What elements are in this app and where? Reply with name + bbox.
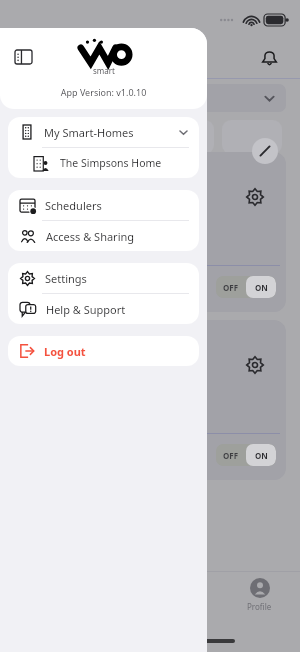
staticText: ON: [255, 282, 268, 293]
staticText: Bath and TV: [31, 130, 94, 145]
staticText: The Simpsons Home: [60, 156, 162, 170]
staticText: My Smart-Homes: [44, 125, 134, 140]
button[interactable]: My Smart-Homes: [8, 117, 199, 147]
staticText: ON: [255, 450, 268, 461]
staticText: App Version: v1.0.10: [0, 86, 207, 98]
staticText: Schedulers: [45, 198, 102, 213]
button[interactable]: The Simpsons Home: [8, 148, 199, 178]
button[interactable]: Access & Sharing: [8, 221, 199, 251]
staticText: OFF: [223, 450, 239, 461]
button[interactable]: OFF: [216, 276, 246, 298]
button[interactable]: Toggle sidebar: [10, 44, 36, 70]
button[interactable]: [222, 120, 282, 154]
staticText: Settings: [45, 271, 87, 286]
button[interactable]: Edit: [252, 138, 278, 164]
button[interactable]: OFF: [216, 444, 246, 466]
button[interactable]: Device settings: [246, 356, 264, 374]
staticText: Dining R: [144, 130, 188, 145]
staticText: Log out: [44, 344, 86, 359]
button[interactable]: Bath and TV: [14, 120, 110, 154]
staticText: r: [18, 224, 24, 240]
button[interactable]: Device settings: [14, 152, 286, 312]
button[interactable]: Notifications: [254, 42, 284, 72]
button[interactable]: Device settings: [14, 320, 286, 480]
button[interactable]: ON: [246, 276, 276, 298]
button[interactable]: [14, 84, 286, 112]
staticText: OFF: [223, 282, 239, 293]
button[interactable]: Log out: [8, 336, 199, 366]
staticText: Access & Sharing: [46, 229, 135, 244]
staticText: Profile: [247, 601, 272, 612]
staticText: Help & Support: [46, 302, 126, 317]
button[interactable]: Device settings: [246, 188, 264, 206]
button[interactable]: ON: [246, 444, 276, 466]
staticText: smart: [93, 65, 115, 76]
button[interactable]: Help & Support: [8, 294, 199, 324]
button[interactable]: Schedulers: [8, 190, 199, 220]
button[interactable]: Profile: [247, 578, 272, 612]
button[interactable]: Dining R: [118, 120, 214, 154]
button[interactable]: Settings: [8, 263, 199, 293]
